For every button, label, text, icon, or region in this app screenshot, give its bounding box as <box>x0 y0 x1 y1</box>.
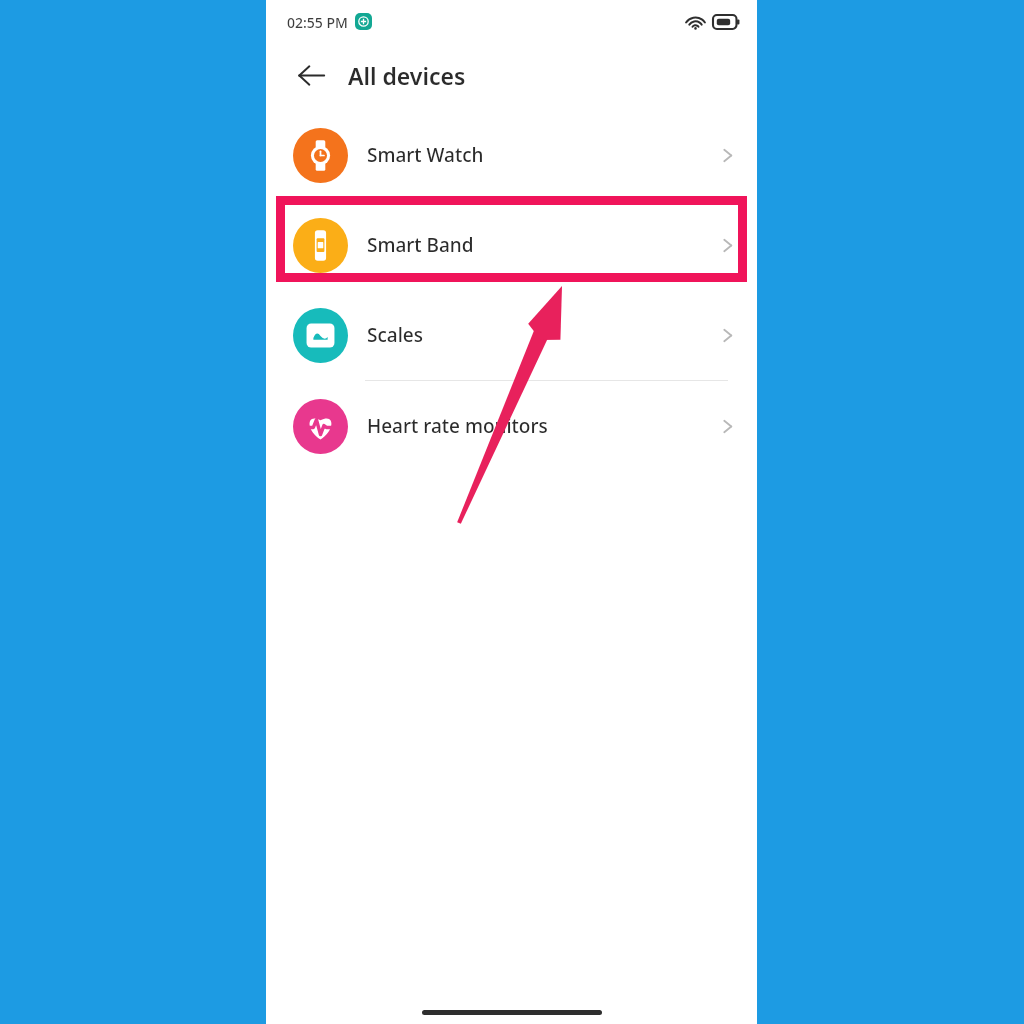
staticText: Scales <box>367 322 423 348</box>
staticText: Smart Watch <box>367 142 484 168</box>
button[interactable]: Scales <box>266 290 757 380</box>
staticText: All devices <box>348 60 466 91</box>
button[interactable]: Smart Watch <box>266 110 757 200</box>
button[interactable]: Heart rate monitors <box>266 381 757 471</box>
button[interactable]: Smart Band <box>266 200 757 290</box>
button[interactable]: Back <box>288 52 334 98</box>
staticText: 02:55 PM <box>287 13 348 32</box>
staticText: Heart rate monitors <box>367 413 548 439</box>
staticText: Smart Band <box>367 232 474 258</box>
